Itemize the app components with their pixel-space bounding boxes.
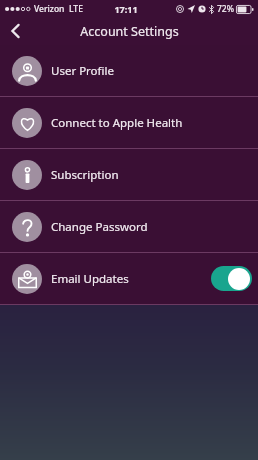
staticText: 17:11 xyxy=(114,3,138,15)
button[interactable]: Change Password xyxy=(0,201,258,252)
staticText: Subscription xyxy=(51,167,119,183)
button[interactable]: Back xyxy=(0,17,30,45)
staticText: 72% xyxy=(217,3,234,15)
staticText: Change Password xyxy=(51,219,148,235)
staticText: Connect to Apple Health xyxy=(51,115,183,131)
button[interactable]: Email Updates xyxy=(0,253,258,304)
button[interactable]: Connect to Apple Health xyxy=(0,97,258,148)
staticText: Verizon xyxy=(34,3,65,15)
button[interactable]: User Profile xyxy=(0,45,258,96)
staticText: Account Settings xyxy=(80,23,179,40)
staticText: User Profile xyxy=(51,63,114,79)
staticText: Email Updates xyxy=(51,271,129,287)
button[interactable]: Subscription xyxy=(0,149,258,200)
button[interactable]: Email Updates toggle, on xyxy=(211,266,252,291)
staticText: LTE xyxy=(69,3,83,15)
